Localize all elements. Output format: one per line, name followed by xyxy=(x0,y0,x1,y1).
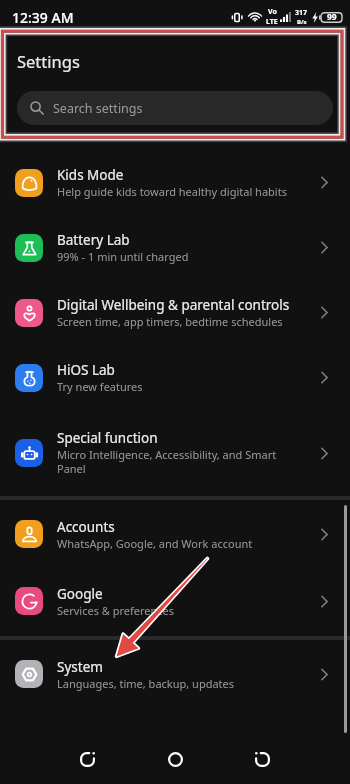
button[interactable]: Battery Lab xyxy=(0,215,350,280)
staticText: Google xyxy=(57,585,103,603)
button[interactable]: HiOS Lab xyxy=(0,345,350,410)
staticText: HiOS Lab xyxy=(57,361,115,379)
staticText: Special function xyxy=(57,429,158,447)
staticText: System xyxy=(57,658,103,676)
button[interactable]: System xyxy=(0,641,350,707)
button[interactable]: Accounts xyxy=(0,501,350,567)
button[interactable]: Special function xyxy=(0,410,350,496)
staticText: B/s xyxy=(297,18,307,26)
staticText: Languages, time, backup, updates xyxy=(57,676,235,691)
button[interactable]: Digital Wellbeing & parental controls xyxy=(0,280,350,345)
button[interactable]: Search settings xyxy=(17,91,333,125)
staticText: LTE xyxy=(266,17,278,27)
button[interactable]: Recents xyxy=(241,738,283,780)
staticText: Digital Wellbeing & parental controls xyxy=(57,296,290,314)
staticText: Accounts xyxy=(57,518,115,536)
staticText: Settings xyxy=(17,50,80,72)
staticText: Battery Lab xyxy=(57,231,130,249)
staticText: Micro Intelligence, Accessibility, and S… xyxy=(57,447,293,477)
button[interactable]: Google xyxy=(0,568,350,634)
staticText: Help guide kids toward healthy digital h… xyxy=(57,184,287,199)
staticText: 99 xyxy=(327,11,337,23)
staticText: Search settings xyxy=(53,100,143,117)
staticText: Kids Mode xyxy=(57,166,124,184)
staticText: Services & preferences xyxy=(57,603,175,618)
button[interactable]: Back xyxy=(66,738,108,780)
staticText: 12:39 AM xyxy=(12,8,74,27)
staticText: 317 xyxy=(295,8,308,18)
staticText: WhatsApp, Google, and Work account xyxy=(57,536,253,551)
staticText: Vo xyxy=(268,7,277,17)
staticText: 99% - 1 min until charged xyxy=(57,249,189,264)
staticText: Try new features xyxy=(57,379,143,394)
staticText: Screen time, app timers, bedtime schedul… xyxy=(57,314,283,329)
button[interactable]: Kids Mode xyxy=(0,150,350,215)
button[interactable]: Home xyxy=(154,738,196,780)
